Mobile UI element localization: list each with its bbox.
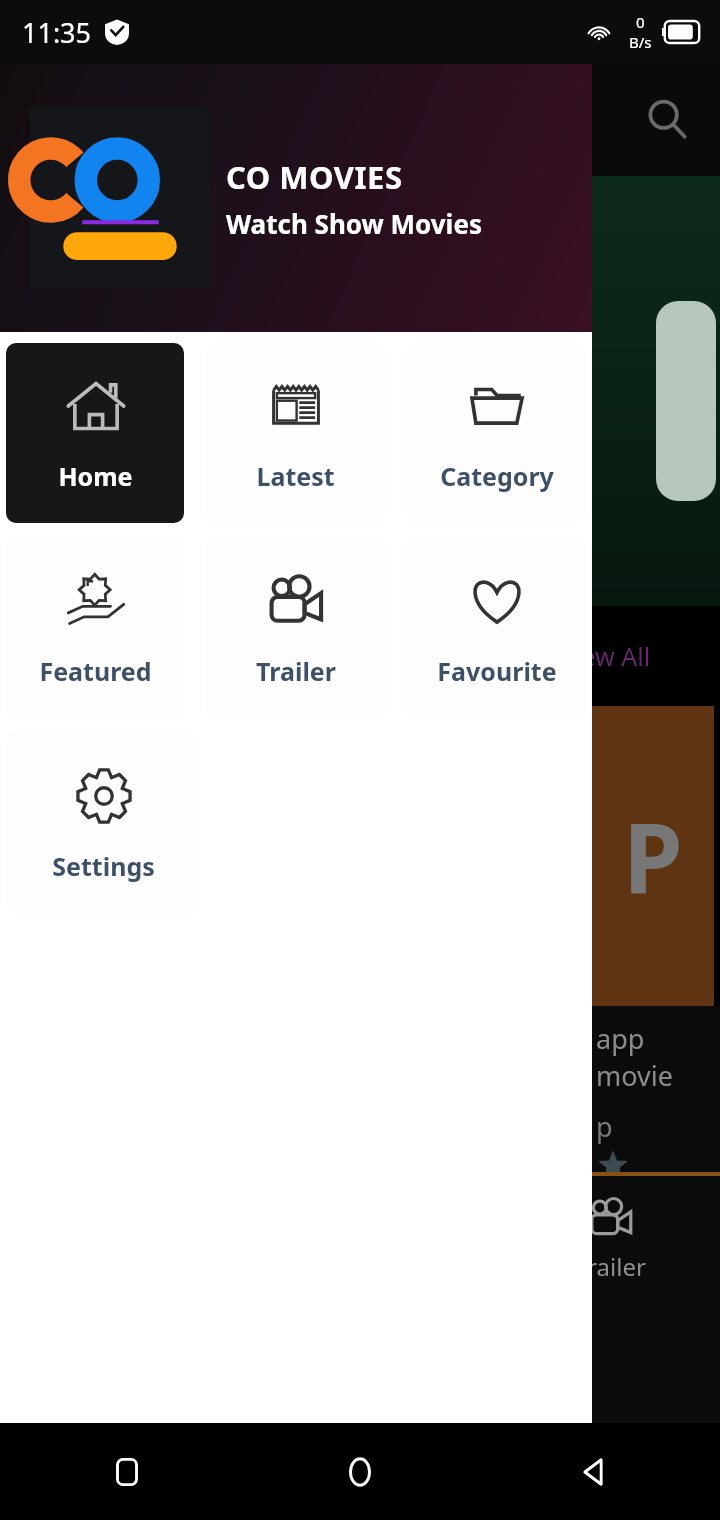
staticText: View All: [560, 639, 651, 673]
staticText: p: [596, 1108, 613, 1145]
button[interactable]: Trailer: [206, 538, 385, 718]
staticText: Settings: [52, 849, 155, 883]
staticText: Trailer: [256, 654, 336, 688]
staticText: Watch Show Movies: [226, 206, 482, 241]
staticText: P: [623, 791, 683, 922]
staticText: Category: [440, 459, 554, 493]
button[interactable]: Settings: [6, 733, 200, 913]
staticText: 11:35: [22, 14, 92, 51]
button[interactable]: Search: [638, 90, 698, 150]
button[interactable]: Favourite: [407, 538, 586, 718]
staticText: Trailer: [575, 1250, 646, 1283]
button[interactable]: Featured: [6, 538, 184, 718]
staticText: app movie: [596, 1020, 720, 1094]
staticText: 0: [636, 12, 645, 32]
staticText: Featured: [39, 654, 152, 688]
button[interactable]: Back: [576, 1455, 610, 1489]
staticText: Favourite: [437, 654, 557, 688]
staticText: Latest: [256, 459, 335, 493]
button[interactable]: Home: [6, 343, 184, 523]
button[interactable]: Latest: [206, 343, 385, 523]
button[interactable]: Home: [343, 1455, 377, 1489]
button[interactable]: Category: [407, 343, 586, 523]
staticText: B/s: [629, 32, 652, 52]
button[interactable]: Recents: [110, 1455, 144, 1489]
staticText: Home: [58, 459, 133, 493]
staticText: CO MOVIES: [226, 156, 403, 198]
